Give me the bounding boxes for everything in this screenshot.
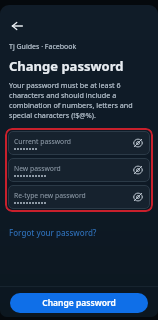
button[interactable]: Show password bbox=[131, 163, 145, 177]
staticText: Change password bbox=[42, 297, 116, 309]
staticText: Your password must be at least 6 charact… bbox=[9, 80, 152, 120]
staticText: Change password bbox=[9, 57, 124, 75]
button[interactable]: Forgot your password? bbox=[9, 226, 97, 239]
staticText: New password bbox=[14, 164, 61, 173]
button[interactable]: Show password bbox=[131, 136, 145, 150]
button[interactable]: Show password bbox=[131, 190, 145, 204]
staticText: Tj Guides · Facebook bbox=[9, 42, 77, 52]
button[interactable]: Back bbox=[5, 14, 29, 38]
button[interactable]: New password bbox=[8, 158, 150, 182]
staticText: Re-type new password bbox=[14, 191, 86, 200]
staticText: Forgot your password? bbox=[9, 227, 97, 238]
staticText: Current password bbox=[14, 137, 72, 146]
button[interactable]: Current password bbox=[8, 131, 150, 155]
button[interactable]: Change password bbox=[10, 293, 148, 313]
button[interactable]: Re-type new password bbox=[8, 185, 150, 209]
